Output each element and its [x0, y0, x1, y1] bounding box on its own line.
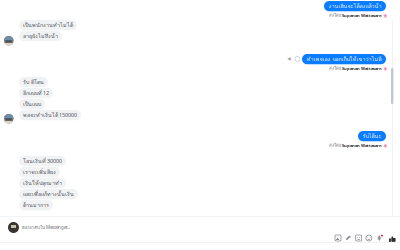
staticText: รับได้นะ — [362, 132, 381, 140]
staticText: เราจะเพิ่มสียง — [23, 168, 56, 176]
button[interactable]: ตอบกลับใน Messenger... — [8, 222, 70, 233]
staticText: เป็นพนักงานทำไม่ได้ — [23, 21, 73, 29]
staticText: เงินให้ปลุกมาทำ — [23, 179, 62, 187]
staticText: อายุยังไม่ถึงน้า — [23, 32, 58, 40]
staticText: 🌸 — [383, 143, 388, 147]
staticText: โอนเงินที่ 30000 — [23, 157, 62, 165]
button[interactable]: Choose a sticker — [356, 235, 362, 241]
staticText: Supanan Wattasarn — [342, 142, 382, 148]
staticText: เป็นแบบ — [23, 100, 41, 108]
button[interactable]: Choose a GIF — [376, 235, 382, 241]
staticText: ส่งโดย — [329, 142, 341, 149]
staticText: งานเดินจะได้ลงแล้วน้า — [328, 2, 381, 10]
button[interactable]: React to message — [295, 56, 300, 61]
staticText: ส่งโดย — [329, 12, 341, 19]
staticText: 🌸 — [383, 66, 388, 70]
staticText: และเพื่อแก้ทางนั้นเงิน — [23, 190, 74, 198]
staticText: 🌸 — [383, 13, 388, 17]
staticText: ด้านมาการ — [23, 201, 49, 209]
button[interactable]: Send a like — [389, 235, 396, 242]
button[interactable]: Choose an emoji — [366, 235, 372, 241]
button[interactable]: Attach a photo or video — [335, 235, 341, 241]
staticText: พอจะทำเงินได้ 150000 — [23, 111, 77, 119]
staticText: Supanan Wattasarn — [342, 12, 382, 18]
staticText: รับ ดีโดน — [23, 78, 44, 86]
staticText: Supanan Wattasarn — [342, 65, 382, 71]
staticText: ส่งโดย — [329, 65, 341, 72]
staticText: ทำเพจเอง บอกเก็บให้เขาว่าไม่ดี — [306, 55, 381, 63]
staticText: ตอบกลับใน Messenger... — [22, 224, 70, 231]
button[interactable]: Attach a file — [345, 235, 351, 241]
staticText: อีกแบบที่ 12 — [23, 89, 49, 97]
button[interactable]: Reply — [286, 56, 292, 62]
